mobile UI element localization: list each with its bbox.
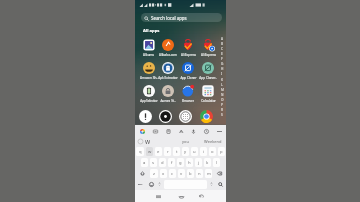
staticText: f <box>171 160 173 166</box>
button[interactable]: Amazon Sh.. <box>139 60 158 83</box>
button[interactable]: h <box>186 158 193 167</box>
button[interactable]: Albums <box>139 37 158 60</box>
button[interactable]: z <box>150 169 158 178</box>
button[interactable]: Weekend <box>199 136 226 146</box>
button[interactable]: i <box>200 147 207 156</box>
button[interactable]: e <box>155 147 162 156</box>
button[interactable]: q <box>136 147 144 156</box>
button[interactable]: Alibaba.com <box>158 37 178 60</box>
button[interactable]: j <box>195 158 202 167</box>
button[interactable]: GIF <box>164 127 172 135</box>
button[interactable]: m <box>205 169 212 178</box>
staticText: Alibaba.com <box>159 53 177 57</box>
button[interactable]: Stickers <box>151 127 159 135</box>
staticText: k <box>206 160 209 166</box>
button[interactable]: o <box>209 147 216 156</box>
button[interactable]: Period <box>209 180 214 189</box>
button[interactable]: App <box>155 107 175 125</box>
staticText: Browser <box>182 99 194 103</box>
button[interactable]: Settings <box>202 127 210 135</box>
staticText: A <box>221 37 224 41</box>
button[interactable]: f <box>168 158 175 167</box>
button[interactable]: c <box>169 169 176 178</box>
button[interactable]: n <box>196 169 203 178</box>
button[interactable]: u <box>191 147 198 156</box>
button[interactable]: Translate <box>177 127 185 135</box>
button[interactable]: p <box>218 147 225 156</box>
staticText: E <box>221 52 223 56</box>
button[interactable]: Numbers <box>136 180 145 189</box>
button[interactable]: AliExpress <box>178 37 198 60</box>
button[interactable]: App Cloner.. <box>198 60 218 83</box>
button[interactable]: b <box>187 169 194 178</box>
staticText: App Cloner <box>180 76 197 80</box>
staticText: G <box>221 62 224 66</box>
staticText: All apps <box>143 28 160 34</box>
button[interactable]: v <box>178 169 185 178</box>
button[interactable]: AliExpress <box>198 37 218 60</box>
staticText: x <box>162 171 165 177</box>
button[interactable]: x <box>160 169 167 178</box>
button[interactable]: you <box>172 136 199 146</box>
staticText: p <box>220 149 223 155</box>
staticText: u <box>193 149 196 155</box>
staticText: m <box>207 171 211 177</box>
staticText: w <box>148 149 152 155</box>
staticText: Amazon Sh.. <box>140 76 158 80</box>
button[interactable]: Calculator <box>198 83 218 106</box>
button[interactable]: AppSelector <box>139 83 158 106</box>
button[interactable]: a <box>141 158 148 167</box>
button[interactable]: Browser <box>178 83 198 106</box>
button[interactable]: Home <box>175 190 187 202</box>
staticText: AppSelector <box>140 99 158 103</box>
button[interactable]: Search local apps <box>141 13 222 22</box>
staticText: L <box>221 83 223 87</box>
staticText: P <box>221 103 223 107</box>
button[interactable]: Shift <box>136 169 148 178</box>
staticText: Aurora St.. <box>160 99 176 103</box>
staticText: Calculator <box>201 99 216 103</box>
button[interactable]: y <box>182 147 189 156</box>
button[interactable]: r <box>164 147 171 156</box>
staticText: v <box>180 171 183 177</box>
staticText: Search local apps <box>151 15 187 21</box>
button[interactable]: W <box>145 136 172 146</box>
button[interactable]: g <box>177 158 184 167</box>
button[interactable]: l <box>213 158 220 167</box>
button[interactable]: d <box>159 158 166 167</box>
staticText: r <box>167 149 169 155</box>
button[interactable]: App <box>196 107 217 125</box>
staticText: n <box>198 171 201 177</box>
button[interactable]: Google <box>138 127 146 135</box>
button[interactable]: App <box>135 107 155 125</box>
staticText: you <box>182 139 189 144</box>
staticText: g <box>179 160 182 166</box>
button[interactable]: Search <box>216 180 225 189</box>
staticText: H <box>221 67 224 71</box>
button[interactable]: Recents <box>152 190 164 202</box>
button[interactable]: App Cloner <box>178 60 198 83</box>
button[interactable]: s <box>150 158 157 167</box>
button[interactable]: Apk Extractor <box>158 60 178 83</box>
staticText: N <box>221 93 224 97</box>
button[interactable]: w <box>146 147 153 156</box>
button[interactable]: App <box>175 107 196 125</box>
staticText: h <box>188 160 191 166</box>
button[interactable]: Comma <box>157 180 162 189</box>
staticText: Apk Extractor <box>158 76 178 80</box>
button[interactable]: Back <box>195 190 207 202</box>
button[interactable]: Emoji <box>147 180 155 189</box>
button[interactable]: k <box>204 158 211 167</box>
staticText: b <box>189 171 192 177</box>
button[interactable]: Clipboard <box>135 136 145 146</box>
button[interactable]: More <box>215 127 223 135</box>
button[interactable]: t <box>173 147 180 156</box>
staticText: W <box>145 138 151 145</box>
staticText: l <box>216 160 218 166</box>
staticText: a <box>143 160 146 166</box>
button[interactable]: Backspace <box>214 169 225 178</box>
button[interactable]: Aurora St.. <box>158 83 178 106</box>
button[interactable]: Voice <box>189 127 197 135</box>
staticText: q <box>139 149 142 155</box>
